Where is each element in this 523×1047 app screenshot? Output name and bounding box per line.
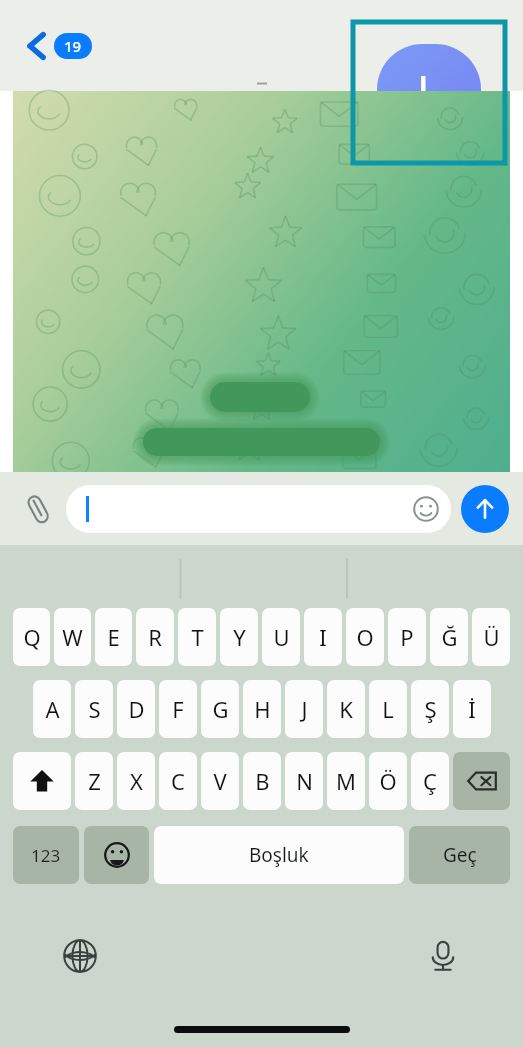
staticText: D: [128, 694, 145, 724]
button[interactable]: İ: [453, 680, 491, 738]
button[interactable]: K: [327, 680, 365, 738]
button[interactable]: Z: [75, 752, 113, 810]
button[interactable]: L: [377, 44, 481, 135]
staticText: Ü: [483, 622, 500, 652]
button[interactable]: Voice input: [420, 933, 466, 979]
staticText: Boşluk: [249, 842, 309, 868]
staticText: C: [171, 766, 185, 796]
staticText: G: [212, 694, 229, 724]
staticText: Ğ: [441, 622, 458, 652]
button[interactable]: Shift: [13, 752, 71, 810]
staticText: N: [296, 766, 313, 796]
staticText: T: [191, 622, 204, 652]
button[interactable]: M: [327, 752, 365, 810]
button[interactable]: Boşluk: [154, 826, 404, 884]
button[interactable]: Emoji: [66, 485, 451, 533]
staticText: U: [273, 622, 290, 652]
button[interactable]: O: [346, 608, 384, 666]
staticText: P: [400, 622, 414, 652]
staticText: Y: [233, 622, 246, 652]
button[interactable]: 123: [13, 826, 79, 884]
staticText: Z: [88, 766, 101, 796]
staticText: K: [339, 694, 353, 724]
button[interactable]: G: [201, 680, 239, 738]
staticText: 19: [64, 36, 82, 56]
staticText: S: [88, 694, 101, 724]
staticText: O: [356, 622, 374, 652]
staticText: H: [254, 694, 271, 724]
button[interactable]: I: [304, 608, 342, 666]
button[interactable]: Profile photo: [353, 22, 505, 163]
button[interactable]: D: [117, 680, 155, 738]
staticText: X: [130, 766, 143, 796]
staticText: Geç: [443, 842, 477, 868]
button[interactable]: L: [369, 680, 407, 738]
button[interactable]: B: [243, 752, 281, 810]
button[interactable]: Q: [13, 608, 50, 666]
staticText: Q: [23, 622, 41, 652]
staticText: W: [62, 622, 83, 652]
staticText: 123: [31, 844, 61, 867]
button[interactable]: Ğ: [430, 608, 468, 666]
button[interactable]: C: [159, 752, 197, 810]
staticText: B: [255, 766, 270, 796]
staticText: M: [336, 766, 356, 796]
button[interactable]: Emoji keyboard: [84, 826, 149, 884]
staticText: E: [107, 622, 120, 652]
button[interactable]: Change keyboard language: [57, 933, 103, 979]
button[interactable]: Ç: [411, 752, 449, 810]
button[interactable]: 19: [22, 27, 96, 65]
button[interactable]: J: [285, 680, 323, 738]
staticText: F: [172, 694, 184, 724]
button[interactable]: S: [75, 680, 113, 738]
staticText: V: [213, 766, 227, 796]
button[interactable]: Ü: [472, 608, 510, 666]
button[interactable]: H: [243, 680, 281, 738]
button[interactable]: Geç: [409, 826, 510, 884]
button[interactable]: Attach: [14, 485, 62, 533]
button[interactable]: Ş: [411, 680, 449, 738]
staticText: İ: [468, 694, 476, 724]
button[interactable]: F: [159, 680, 197, 738]
button[interactable]: Ö: [369, 752, 407, 810]
button[interactable]: U: [262, 608, 300, 666]
button[interactable]: T: [178, 608, 216, 666]
staticText: Ö: [379, 766, 397, 796]
staticText: L: [417, 60, 441, 120]
staticText: A: [45, 694, 60, 724]
button[interactable]: Backspace: [453, 752, 510, 810]
button[interactable]: N: [285, 752, 323, 810]
button[interactable]: E: [95, 608, 132, 666]
staticText: I: [319, 622, 327, 652]
staticText: L: [382, 694, 394, 724]
button[interactable]: Emoji: [409, 492, 443, 526]
button[interactable]: Y: [220, 608, 258, 666]
staticText: R: [148, 622, 162, 652]
button[interactable]: V: [201, 752, 239, 810]
button[interactable]: A: [33, 680, 71, 738]
staticText: Ç: [423, 766, 437, 796]
button[interactable]: P: [388, 608, 426, 666]
button[interactable]: X: [117, 752, 155, 810]
button[interactable]: W: [54, 608, 91, 666]
staticText: Ş: [424, 694, 437, 724]
staticText: J: [301, 694, 308, 724]
button[interactable]: R: [136, 608, 174, 666]
button[interactable]: Send: [461, 485, 509, 533]
